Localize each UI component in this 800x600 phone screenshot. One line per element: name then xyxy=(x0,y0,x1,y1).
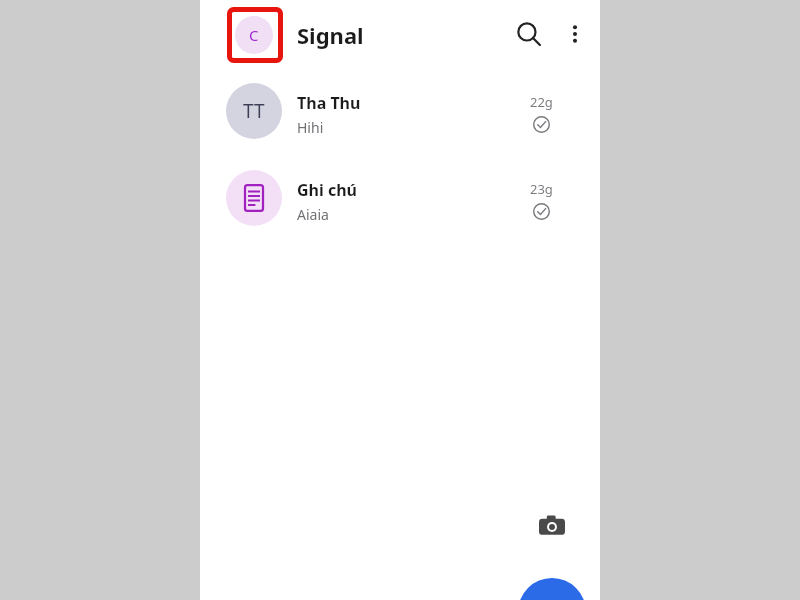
button[interactable]: Camera xyxy=(524,498,580,554)
button[interactable]: New message xyxy=(518,578,586,600)
staticText: Aiaia xyxy=(297,205,329,224)
staticText: Signal xyxy=(297,20,364,50)
button[interactable]: Profile xyxy=(235,16,273,54)
staticText: 23g xyxy=(530,180,553,198)
staticText: 22g xyxy=(530,93,553,111)
staticText: TT xyxy=(243,98,265,124)
staticText: Ghi chú xyxy=(297,179,357,201)
staticText: Hihi xyxy=(297,118,324,137)
button[interactable]: More options xyxy=(551,10,599,58)
button[interactable]: TT xyxy=(200,83,600,155)
button[interactable]: Search xyxy=(505,10,553,58)
button[interactable]: Ghi chú xyxy=(200,170,600,242)
staticText: C xyxy=(249,25,259,45)
staticText: Tha Thu xyxy=(297,92,361,114)
